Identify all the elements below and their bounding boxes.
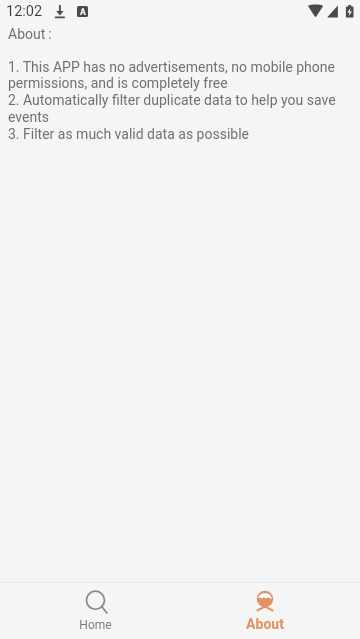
staticText: About : [8, 26, 52, 42]
other: About [254, 590, 276, 612]
staticText: About [246, 616, 284, 632]
button[interactable]: About [180, 582, 349, 639]
staticText: A [80, 7, 86, 17]
button[interactable]: Home [11, 582, 180, 639]
staticText: 1. This APP has no advertisements, no mo… [8, 59, 350, 142]
staticText: Home [79, 618, 112, 632]
other: Home [86, 591, 108, 613]
staticText: 12:02 [6, 3, 43, 20]
